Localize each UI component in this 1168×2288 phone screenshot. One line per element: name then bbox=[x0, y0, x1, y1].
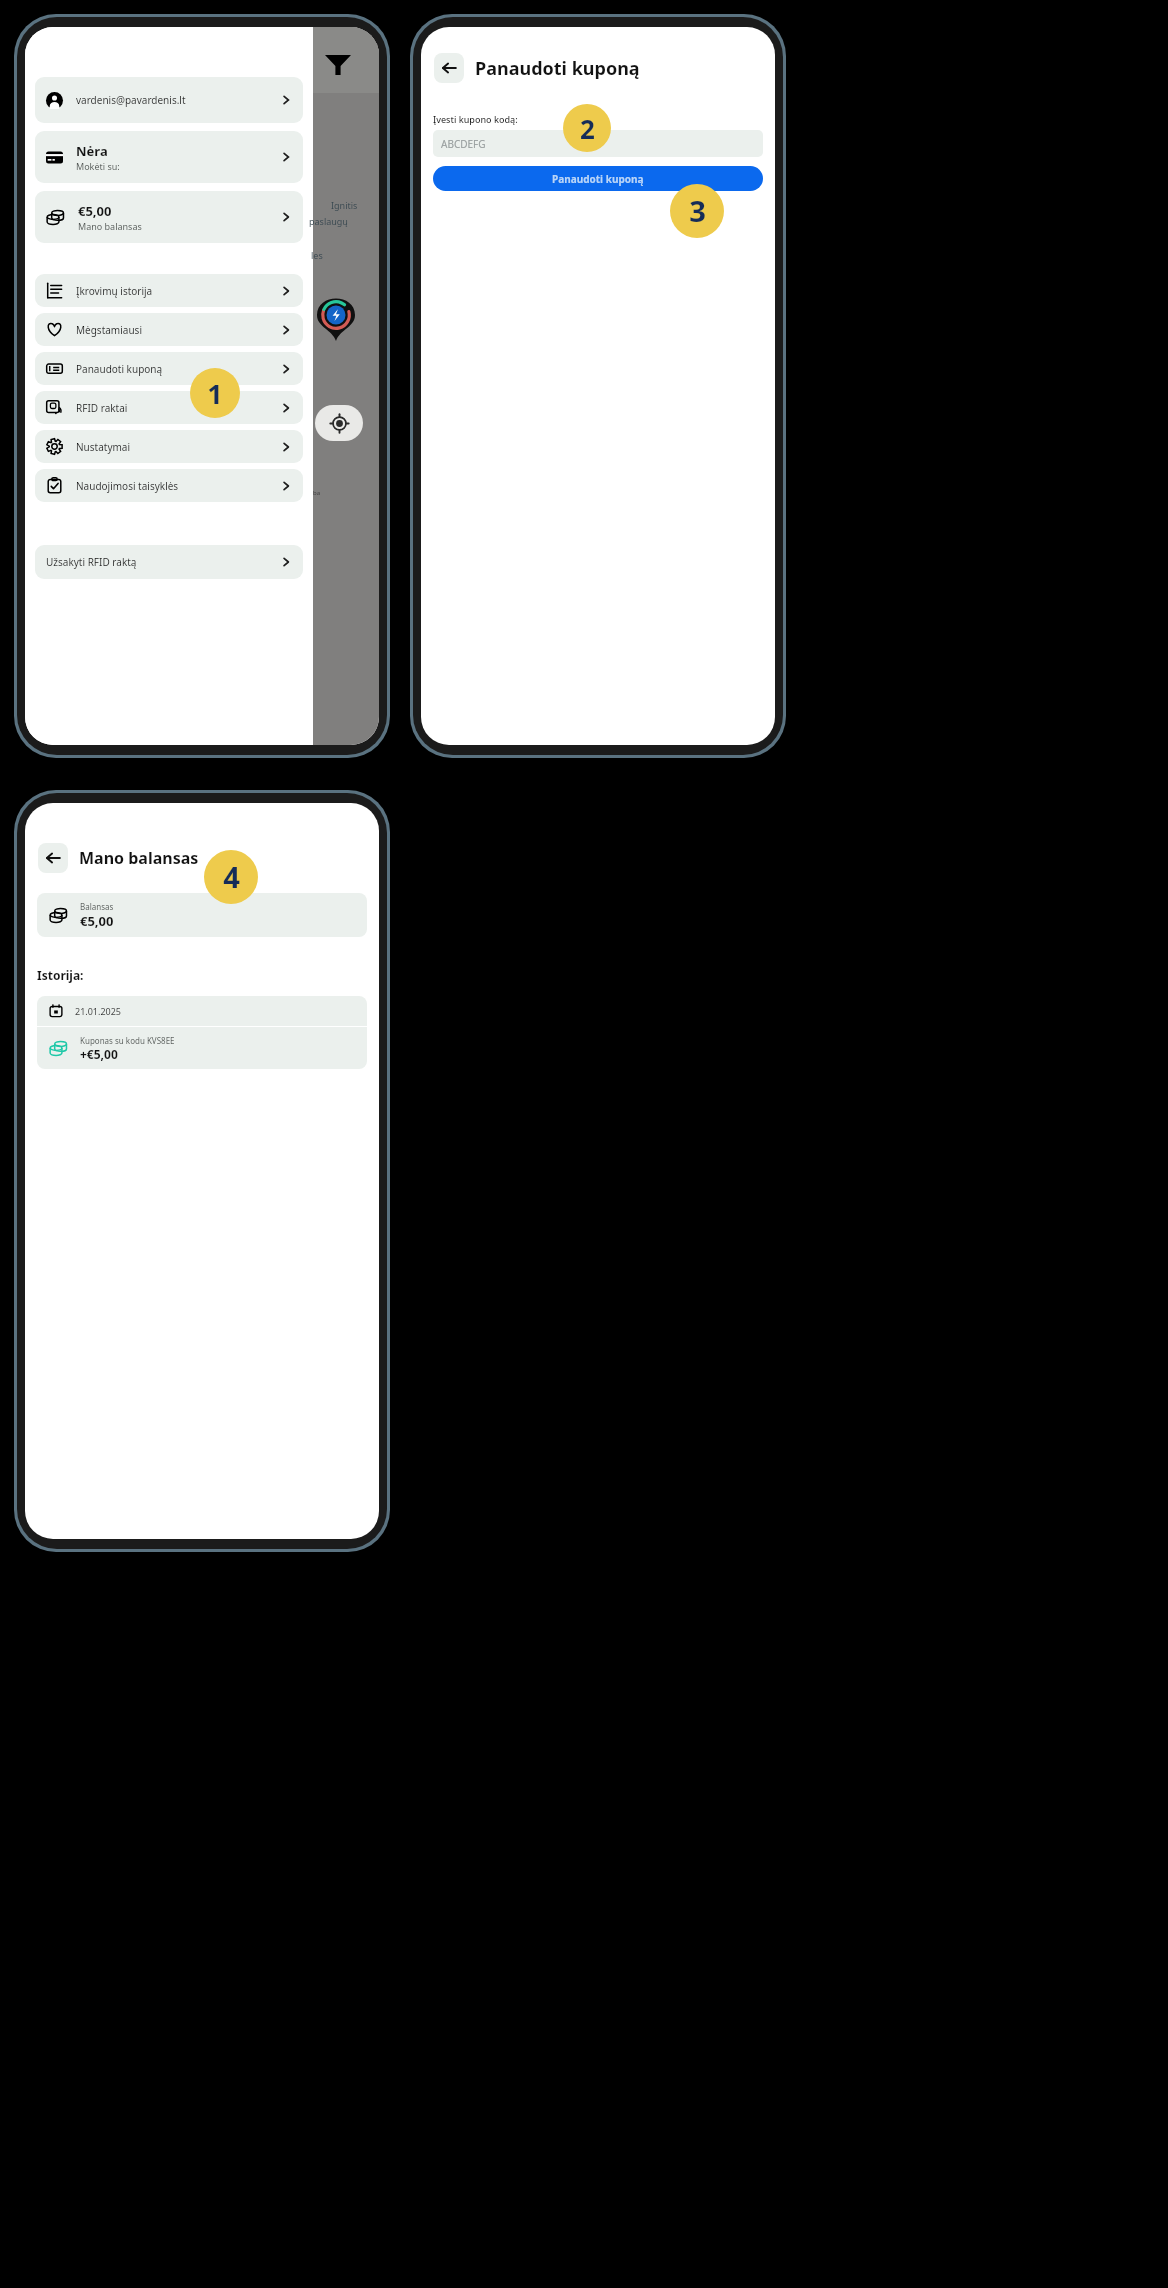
staticText: 4 bbox=[223, 857, 240, 897]
staticText: €5,00 bbox=[80, 912, 114, 930]
staticText: 1 bbox=[207, 375, 223, 412]
staticText: ABCDEFG bbox=[441, 137, 486, 151]
staticText: Įkrovimų istorija bbox=[76, 284, 153, 298]
button[interactable]: Panaudoti kuponą bbox=[35, 352, 303, 385]
button[interactable]: Back bbox=[434, 53, 464, 83]
button[interactable]: Balansas bbox=[37, 893, 367, 937]
staticText: Balansas bbox=[80, 901, 114, 912]
button[interactable]: RFID raktai bbox=[35, 391, 303, 424]
button[interactable]: My location bbox=[315, 405, 363, 441]
button[interactable]: Kuponas su kodu KVS8EE bbox=[37, 1027, 367, 1069]
button[interactable]: Back bbox=[38, 843, 68, 873]
button[interactable]: Įkrovimų istorija bbox=[35, 274, 303, 307]
staticText: ba bbox=[313, 489, 321, 497]
button[interactable]: Panaudoti kuponą bbox=[433, 166, 763, 191]
staticText: Panaudoti kuponą bbox=[76, 362, 163, 376]
staticText: Mano balansas bbox=[78, 220, 142, 232]
staticText: Panaudoti kuponą bbox=[552, 172, 644, 186]
staticText: +€5,00 bbox=[80, 1046, 118, 1062]
staticText: 2 bbox=[580, 111, 595, 146]
staticText: 3 bbox=[689, 191, 706, 231]
button[interactable]: Mėgstamiausi bbox=[35, 313, 303, 346]
staticText: Panaudoti kuponą bbox=[475, 56, 640, 81]
button[interactable]: Užsakyti RFID raktą bbox=[35, 545, 303, 579]
staticText: les bbox=[311, 249, 323, 261]
button[interactable]: €5,00 bbox=[35, 191, 303, 243]
staticText: Naudojimosi taisyklės bbox=[76, 479, 179, 493]
staticText: vardenis@pavardenis.lt bbox=[76, 93, 186, 107]
staticText: Mėgstamiausi bbox=[76, 323, 142, 337]
button[interactable]: ABCDEFG bbox=[433, 130, 763, 157]
staticText: 21.01.2025 bbox=[75, 1005, 122, 1017]
staticText: Mokėti su: bbox=[76, 160, 120, 172]
staticText: Nustatymai bbox=[76, 440, 131, 454]
staticText: €5,00 bbox=[78, 202, 112, 220]
button[interactable]: Nėra bbox=[35, 131, 303, 183]
staticText: Nėra bbox=[76, 142, 108, 160]
button[interactable]: Naudojimosi taisyklės bbox=[35, 469, 303, 502]
staticText: Kuponas su kodu KVS8EE bbox=[80, 1035, 175, 1046]
button[interactable]: Nustatymai bbox=[35, 430, 303, 463]
staticText: Įvesti kupono kodą: bbox=[433, 113, 518, 125]
staticText: paslaugų bbox=[309, 215, 348, 227]
button[interactable]: vardenis@pavardenis.lt bbox=[35, 77, 303, 123]
staticText: Mano balansas bbox=[79, 847, 199, 869]
staticText: Ignitis bbox=[331, 199, 358, 211]
staticText: Užsakyti RFID raktą bbox=[46, 555, 137, 569]
staticText: RFID raktai bbox=[76, 401, 128, 415]
button[interactable]: 21.01.2025 bbox=[37, 996, 367, 1026]
staticText: Istorija: bbox=[37, 967, 84, 983]
